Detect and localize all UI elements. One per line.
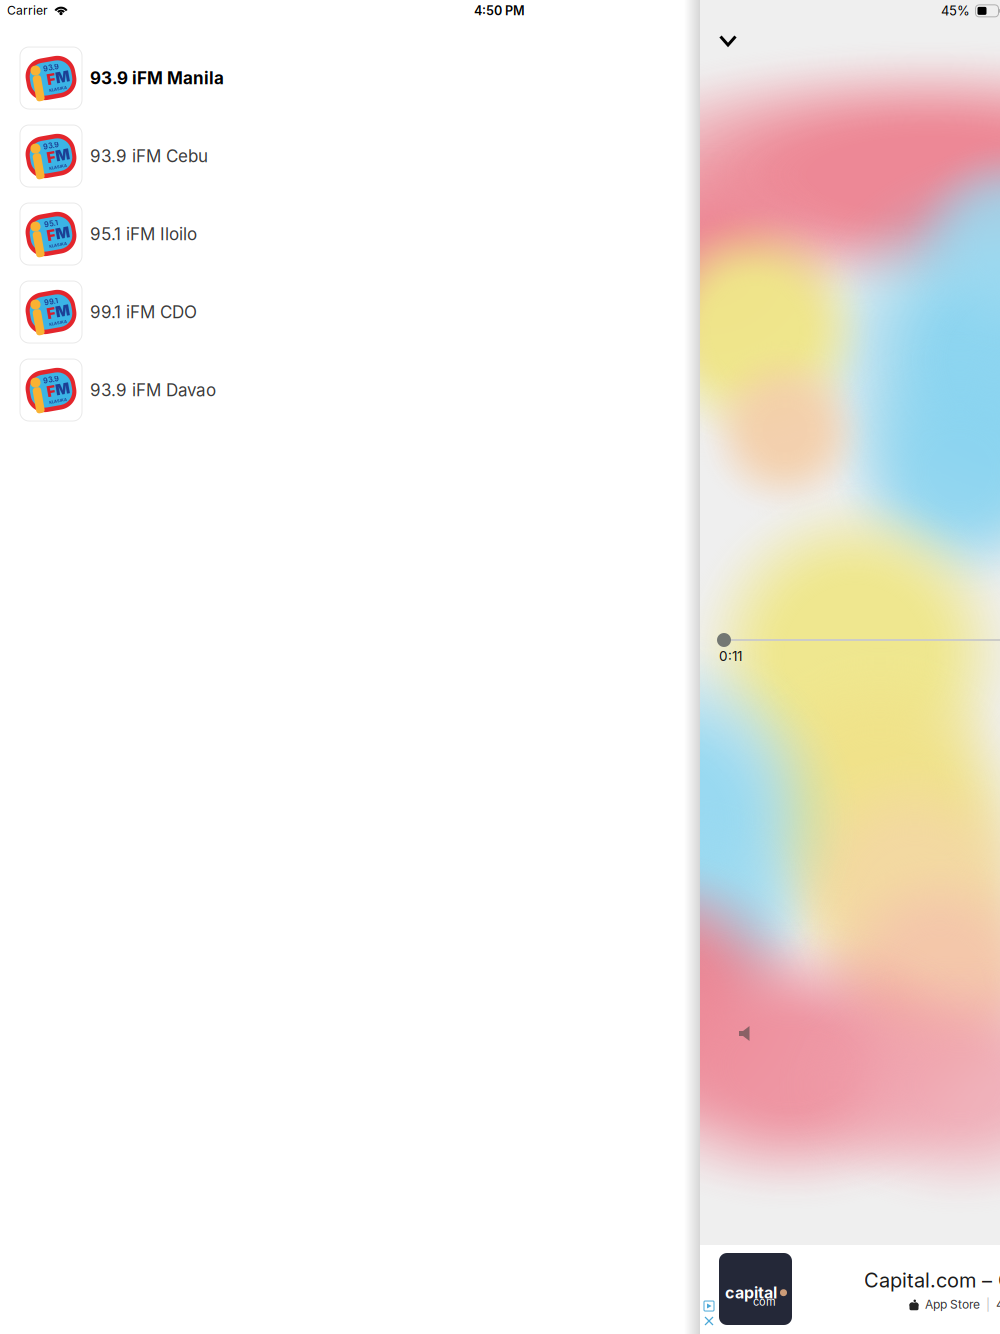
staticText: M	[55, 148, 69, 166]
staticText: |	[986, 1297, 990, 1311]
button[interactable]: F	[0, 351, 700, 429]
button[interactable]: F	[0, 273, 700, 351]
staticText: KLASIKA	[47, 166, 65, 170]
staticText: App Store	[925, 1297, 980, 1311]
staticText: 93.9 iFM Davao	[90, 380, 216, 400]
staticText: 4:50 PM	[474, 3, 525, 18]
button[interactable]: Volume	[732, 1021, 760, 1047]
staticText: F	[46, 70, 55, 88]
staticText: KLASIKA	[47, 322, 65, 326]
staticText: KLASIKA	[47, 88, 65, 92]
staticText: F	[46, 148, 55, 166]
button[interactable]: F	[0, 117, 700, 195]
staticText: F	[46, 304, 55, 322]
staticText: M	[55, 382, 69, 400]
staticText: 93.9	[45, 64, 61, 72]
staticText: 95.1 iFM Iloilo	[90, 224, 197, 244]
staticText: 93.9	[45, 142, 61, 150]
button[interactable]: Dismiss	[706, 21, 750, 61]
staticText: 95.1	[46, 220, 60, 228]
staticText: KLASIKA	[47, 400, 65, 404]
staticText: 93.9 iFM Cebu	[90, 146, 208, 166]
staticText: Carrier	[7, 3, 48, 18]
button[interactable]: F	[0, 39, 700, 117]
staticText: 4	[996, 1297, 1000, 1311]
staticText: M	[55, 226, 69, 244]
staticText: M	[55, 304, 69, 322]
staticText: 93.9	[45, 376, 61, 384]
staticText: F	[46, 226, 55, 244]
staticText: capital	[725, 1283, 777, 1302]
staticText: Capital.com – C	[864, 1268, 1000, 1292]
button[interactable]: capital	[700, 1245, 1000, 1334]
staticText: 45%	[941, 3, 970, 19]
staticText: M	[55, 70, 69, 88]
staticText: KLASIKA	[47, 244, 65, 248]
button[interactable]: F	[0, 195, 700, 273]
staticText: 93.9 iFM Manila	[90, 68, 224, 88]
staticText: F	[46, 382, 55, 400]
staticText: 99.1 iFM CDO	[90, 302, 197, 322]
staticText: 99.1	[46, 298, 60, 306]
staticText: com	[753, 1295, 776, 1308]
staticText: 0:11	[719, 648, 742, 664]
